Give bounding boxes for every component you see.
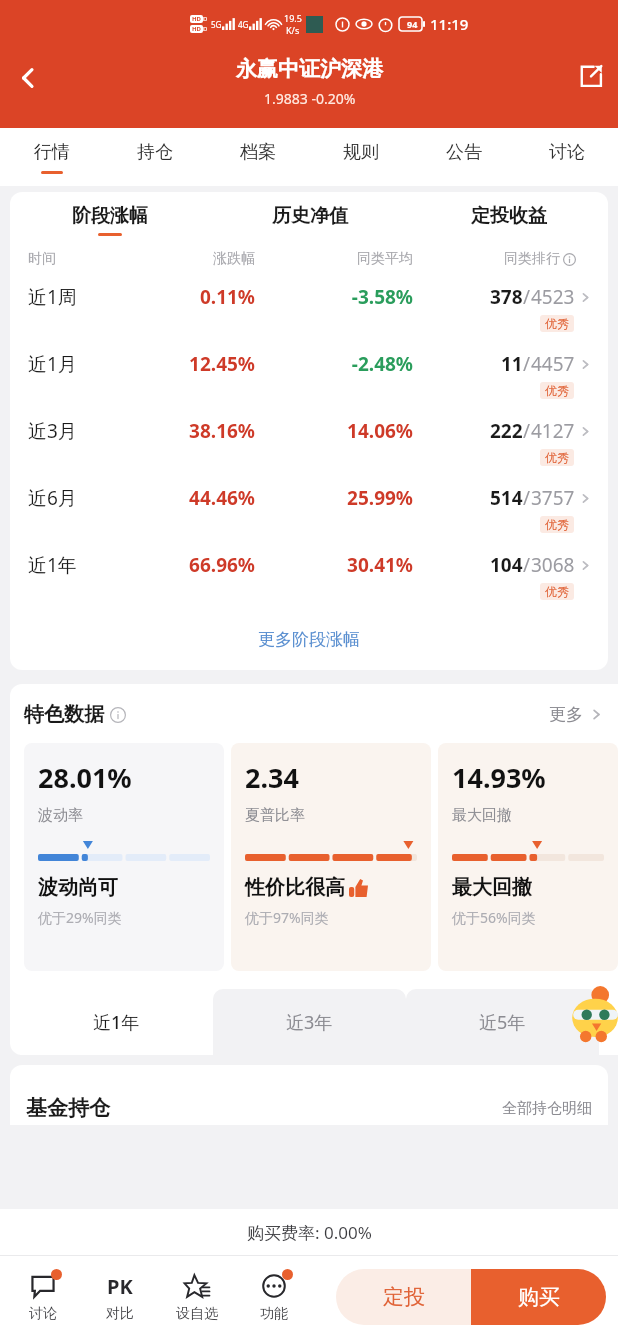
- staticText: 基金持仓: [26, 1095, 110, 1121]
- staticText: 档案: [240, 141, 276, 164]
- button[interactable]: PK: [81, 1256, 158, 1338]
- staticText: HD: [192, 25, 201, 33]
- staticText: 夏普比率: [245, 806, 305, 825]
- button[interactable]: 规则: [309, 128, 412, 186]
- button[interactable]: Back: [0, 50, 56, 106]
- button[interactable]: 14.93%: [438, 743, 618, 971]
- staticText: 特色数据: [24, 702, 104, 727]
- button[interactable]: 近1年: [10, 544, 608, 611]
- staticText: 定投: [383, 1284, 425, 1310]
- staticText: PK: [107, 1273, 133, 1300]
- staticText: 12.45%: [134, 351, 255, 377]
- button[interactable]: 近3月: [10, 410, 608, 477]
- staticText: D: [203, 25, 208, 33]
- staticText: 104: [490, 552, 523, 578]
- button[interactable]: 定投: [336, 1269, 471, 1325]
- staticText: 2.34: [245, 759, 299, 796]
- staticText: 最大回撤: [452, 806, 512, 825]
- button[interactable]: 28.01%: [24, 743, 224, 971]
- button[interactable]: 历史净值: [210, 204, 409, 236]
- staticText: 波动尚可: [38, 875, 118, 900]
- staticText: 优秀: [545, 316, 569, 331]
- button[interactable]: 近3年: [213, 989, 406, 1055]
- staticText: 4457: [531, 351, 575, 377]
- staticText: 222: [490, 418, 523, 444]
- staticText: 28.01%: [38, 759, 132, 796]
- button[interactable]: 公告: [412, 128, 515, 186]
- staticText: /: [523, 552, 531, 578]
- staticText: 近3年: [286, 1010, 333, 1035]
- button[interactable]: 购买: [471, 1269, 606, 1325]
- staticText: 讨论: [549, 141, 585, 164]
- button[interactable]: 讨论: [4, 1256, 81, 1338]
- staticText: 19.5: [284, 12, 302, 24]
- staticText: 规则: [343, 141, 379, 164]
- staticText: 优秀: [545, 517, 569, 532]
- staticText: 94: [407, 18, 418, 30]
- staticText: 同类平均: [255, 250, 413, 268]
- button[interactable]: 功能: [235, 1256, 312, 1338]
- button[interactable]: 行情: [0, 128, 103, 186]
- button[interactable]: 更多: [549, 704, 604, 725]
- staticText: 1.9883 -0.20%: [264, 89, 356, 108]
- staticText: 同类排行: [504, 250, 560, 268]
- staticText: 近1月: [28, 351, 134, 377]
- staticText: 30.41%: [255, 552, 413, 578]
- staticText: 近1年: [28, 552, 134, 578]
- button[interactable]: Share: [564, 49, 618, 103]
- staticText: 性价比很高: [245, 875, 345, 900]
- staticText: 全部持仓明细: [502, 1099, 592, 1118]
- staticText: 514: [490, 485, 523, 511]
- staticText: 优于29%同类: [38, 908, 122, 927]
- staticText: 永赢中证沪深港: [236, 56, 383, 82]
- staticText: 11: [501, 351, 523, 377]
- staticText: 25.99%: [255, 485, 413, 511]
- staticText: 近5年: [479, 1010, 526, 1035]
- staticText: 设自选: [176, 1305, 218, 1323]
- staticText: 优秀: [545, 383, 569, 398]
- button[interactable]: 定投收益: [409, 204, 608, 236]
- staticText: 阶段涨幅: [72, 204, 148, 228]
- staticText: 4G: [238, 19, 249, 30]
- staticText: 4523: [531, 284, 575, 310]
- button[interactable]: 近1周: [10, 276, 608, 343]
- staticText: 更多阶段涨幅: [258, 629, 360, 650]
- button[interactable]: 近6月: [10, 477, 608, 544]
- button[interactable]: 更多阶段涨幅: [10, 629, 608, 650]
- staticText: /: [523, 351, 531, 377]
- button[interactable]: 近1月: [10, 343, 608, 410]
- staticText: 5G: [211, 19, 222, 30]
- staticText: 优于97%同类: [245, 908, 329, 927]
- staticText: D: [203, 15, 208, 23]
- button[interactable]: 讨论: [515, 128, 618, 186]
- staticText: 行情: [34, 141, 70, 164]
- staticText: 历史净值: [272, 204, 348, 228]
- staticText: 购买费率: 0.00%: [247, 1221, 372, 1244]
- staticText: 近6月: [28, 485, 134, 511]
- button[interactable]: 近5年: [406, 989, 599, 1055]
- staticText: 38.16%: [134, 418, 255, 444]
- button[interactable]: 2.34: [231, 743, 431, 971]
- staticText: 66.96%: [134, 552, 255, 578]
- staticText: 近3月: [28, 418, 134, 444]
- button[interactable]: 持仓: [103, 128, 206, 186]
- staticText: HD: [192, 15, 201, 23]
- staticText: 3068: [531, 552, 575, 578]
- staticText: -3.58%: [255, 284, 413, 310]
- staticText: 涨跌幅: [134, 250, 255, 268]
- staticText: 功能: [260, 1305, 288, 1323]
- staticText: 讨论: [29, 1305, 57, 1323]
- button[interactable]: 设自选: [158, 1256, 235, 1338]
- staticText: 近1年: [93, 1010, 140, 1035]
- staticText: 优于56%同类: [452, 908, 536, 927]
- button[interactable]: 阶段涨幅: [10, 204, 210, 236]
- staticText: 持仓: [137, 141, 173, 164]
- staticText: 优秀: [545, 584, 569, 599]
- button[interactable]: 近1年: [20, 989, 213, 1055]
- button[interactable]: 档案: [206, 128, 309, 186]
- staticText: /: [523, 485, 531, 511]
- staticText: 4127: [531, 418, 575, 444]
- staticText: 11:19: [430, 14, 469, 34]
- staticText: 优秀: [545, 450, 569, 465]
- staticText: 对比: [106, 1305, 134, 1323]
